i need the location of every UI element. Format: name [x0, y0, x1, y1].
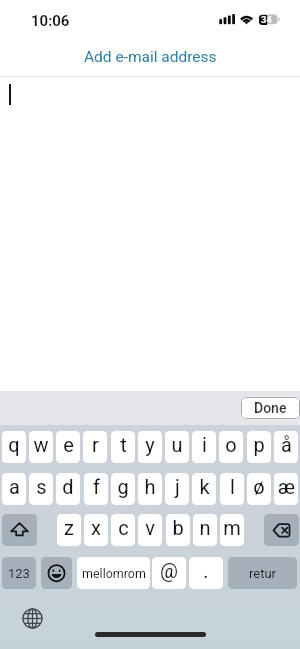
staticText: g — [117, 475, 129, 498]
button[interactable]: Done — [241, 397, 300, 419]
button[interactable]: n — [193, 514, 217, 546]
staticText: o — [225, 433, 237, 456]
button[interactable]: ø — [247, 473, 271, 505]
staticText: f — [93, 475, 100, 498]
button[interactable]: y — [138, 431, 162, 463]
staticText: retur — [249, 566, 277, 581]
button[interactable]: f — [84, 473, 108, 505]
staticText: d — [62, 475, 74, 498]
button[interactable]: q — [2, 431, 26, 463]
button[interactable]: r — [83, 431, 107, 463]
staticText: . — [203, 559, 209, 582]
button[interactable]: e — [56, 431, 80, 463]
button[interactable]: h — [138, 473, 162, 505]
staticText: k — [199, 475, 210, 498]
button[interactable]: . — [189, 557, 223, 589]
button[interactable]: v — [138, 514, 162, 546]
staticText: q — [8, 433, 20, 456]
staticText: å — [281, 433, 292, 456]
button[interactable]: u — [165, 431, 189, 463]
button[interactable]: t — [111, 431, 135, 463]
staticText: v — [145, 516, 155, 539]
button[interactable]: z — [57, 514, 81, 546]
button[interactable]: b — [166, 514, 190, 546]
staticText: c — [118, 516, 129, 539]
button[interactable]: s — [29, 473, 53, 505]
button[interactable]: mellomrom — [77, 557, 150, 589]
staticText: m — [223, 516, 241, 539]
button[interactable]: w — [29, 431, 53, 463]
button[interactable]: k — [192, 473, 216, 505]
staticText: l — [230, 475, 235, 498]
staticText: ø — [253, 475, 265, 498]
button[interactable]: i — [192, 431, 216, 463]
button[interactable]: Delete — [264, 514, 299, 546]
staticText: a — [9, 475, 20, 498]
staticText: n — [199, 516, 211, 539]
button[interactable]: c — [111, 514, 135, 546]
button[interactable]: x — [84, 514, 108, 546]
staticText: @ — [160, 559, 178, 582]
button[interactable]: g — [111, 473, 135, 505]
staticText: s — [36, 475, 47, 498]
staticText: h — [144, 475, 156, 498]
staticText: y — [145, 433, 155, 456]
button[interactable]: 123 — [2, 557, 36, 589]
staticText: x — [91, 516, 101, 539]
staticText: j — [175, 475, 180, 498]
button[interactable]: Change keyboard — [22, 608, 43, 629]
staticText: i — [202, 433, 207, 456]
button[interactable]: Add e-mail address — [0, 39, 300, 75]
button[interactable]: Shift — [2, 514, 37, 546]
staticText: æ — [278, 475, 295, 498]
staticText: r — [92, 433, 99, 456]
button[interactable]: o — [219, 431, 243, 463]
button[interactable]: @ — [152, 557, 186, 589]
button[interactable]: m — [220, 514, 244, 546]
button[interactable]: Emoji — [41, 557, 72, 589]
staticText: 34 — [261, 14, 273, 25]
staticText: w — [33, 433, 49, 456]
button[interactable]: æ — [274, 473, 298, 505]
staticText: u — [171, 433, 183, 456]
staticText: t — [120, 433, 127, 456]
staticText: 123 — [8, 566, 30, 581]
staticText: 10:06 — [31, 12, 70, 30]
button[interactable]: j — [165, 473, 189, 505]
button[interactable]: å — [274, 431, 298, 463]
button[interactable]: l — [220, 473, 244, 505]
staticText: Add e-mail address — [84, 48, 217, 66]
button[interactable]: d — [56, 473, 80, 505]
button[interactable]: retur — [228, 557, 297, 589]
staticText: e — [63, 433, 74, 456]
staticText: p — [253, 433, 265, 456]
staticText: b — [172, 516, 184, 539]
staticText: z — [64, 516, 74, 539]
staticText: Done — [254, 400, 287, 416]
button[interactable]: a — [2, 473, 26, 505]
staticText: mellomrom — [82, 566, 146, 581]
button[interactable]: p — [247, 431, 271, 463]
